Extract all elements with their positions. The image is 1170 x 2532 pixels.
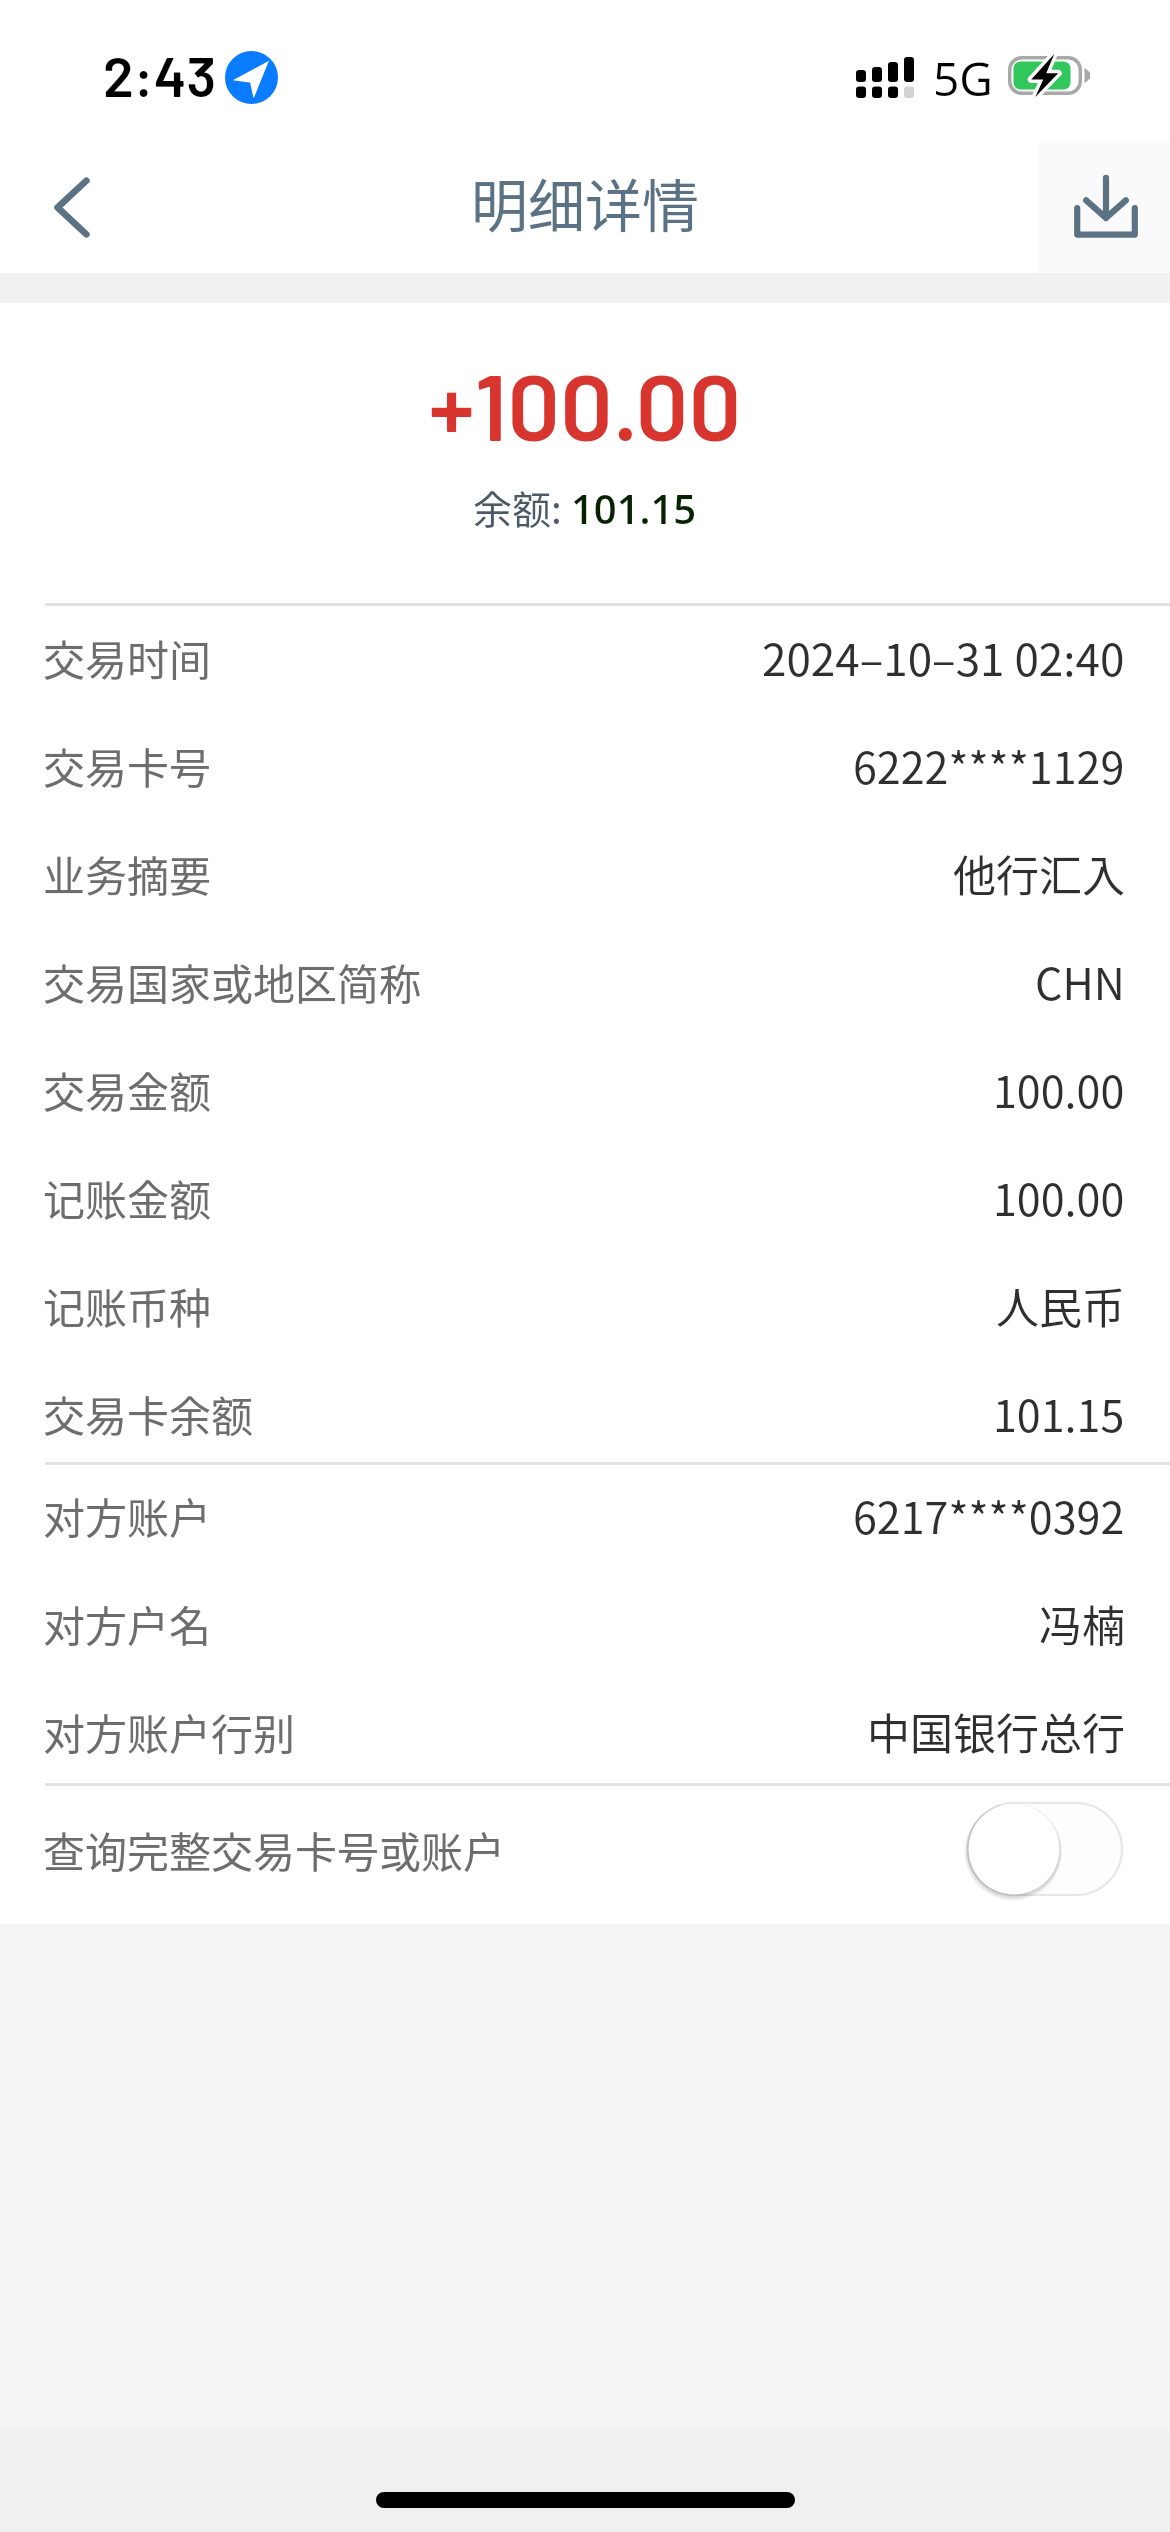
staticText: 2024–10–31 02:40 — [762, 625, 1125, 689]
staticText: 交易国家或地区简称 — [43, 951, 422, 1012]
staticText: 人民币 — [996, 1274, 1125, 1336]
staticText: 101.15 — [993, 1382, 1125, 1444]
staticText: 交易金额 — [43, 1059, 212, 1120]
staticText: 2:43 — [103, 41, 217, 108]
staticText: 100.00 — [993, 1058, 1125, 1120]
staticText: 6222****1129 — [853, 734, 1125, 796]
staticText: 5G — [933, 47, 993, 110]
staticText: 业务摘要 — [43, 843, 212, 904]
button[interactable]: 交易金额 — [0, 1050, 1170, 1128]
staticText: 他行汇入 — [953, 842, 1125, 904]
button[interactable]: 对方户名 — [0, 1584, 1170, 1662]
staticText: 记账金额 — [43, 1167, 212, 1228]
staticText: 6217****0392 — [853, 1484, 1125, 1546]
staticText: 100.00 — [993, 1166, 1125, 1228]
button[interactable]: 查询完整交易卡号或账户 — [0, 1791, 1170, 1907]
button[interactable]: Back — [0, 141, 132, 273]
button[interactable]: 交易卡余额 — [0, 1374, 1170, 1452]
staticText: 对方户名 — [43, 1593, 212, 1654]
staticText: 查询完整交易卡号或账户 — [43, 1819, 506, 1880]
staticText: 101.15 — [571, 481, 697, 535]
staticText: 记账币种 — [43, 1275, 212, 1336]
button[interactable]: Download statement — [1038, 141, 1170, 273]
button[interactable]: 记账金额 — [0, 1158, 1170, 1236]
staticText: CHN — [1035, 950, 1125, 1012]
staticText: 明细详情 — [0, 161, 1170, 244]
button[interactable]: Show full card number — [964, 1799, 1126, 1899]
button[interactable]: 交易时间 — [0, 618, 1170, 696]
staticText: 交易卡号 — [43, 735, 212, 796]
staticText: 对方账户行别 — [43, 1701, 296, 1762]
button[interactable]: 对方账户 — [0, 1476, 1170, 1554]
button[interactable]: 交易国家或地区简称 — [0, 942, 1170, 1020]
staticText: 交易卡余额 — [43, 1383, 254, 1444]
staticText: 冯楠 — [1039, 1592, 1125, 1654]
button[interactable]: 记账币种 — [0, 1266, 1170, 1344]
button[interactable]: 对方账户行别 — [0, 1692, 1170, 1770]
button[interactable]: 业务摘要 — [0, 834, 1170, 912]
staticText: 中国银行总行 — [867, 1700, 1125, 1762]
button[interactable]: 交易卡号 — [0, 726, 1170, 804]
staticText: 对方账户 — [43, 1485, 212, 1546]
staticText: +100.00 — [0, 348, 1170, 460]
staticText: 交易时间 — [43, 627, 212, 688]
staticText: 余额: — [473, 479, 571, 535]
